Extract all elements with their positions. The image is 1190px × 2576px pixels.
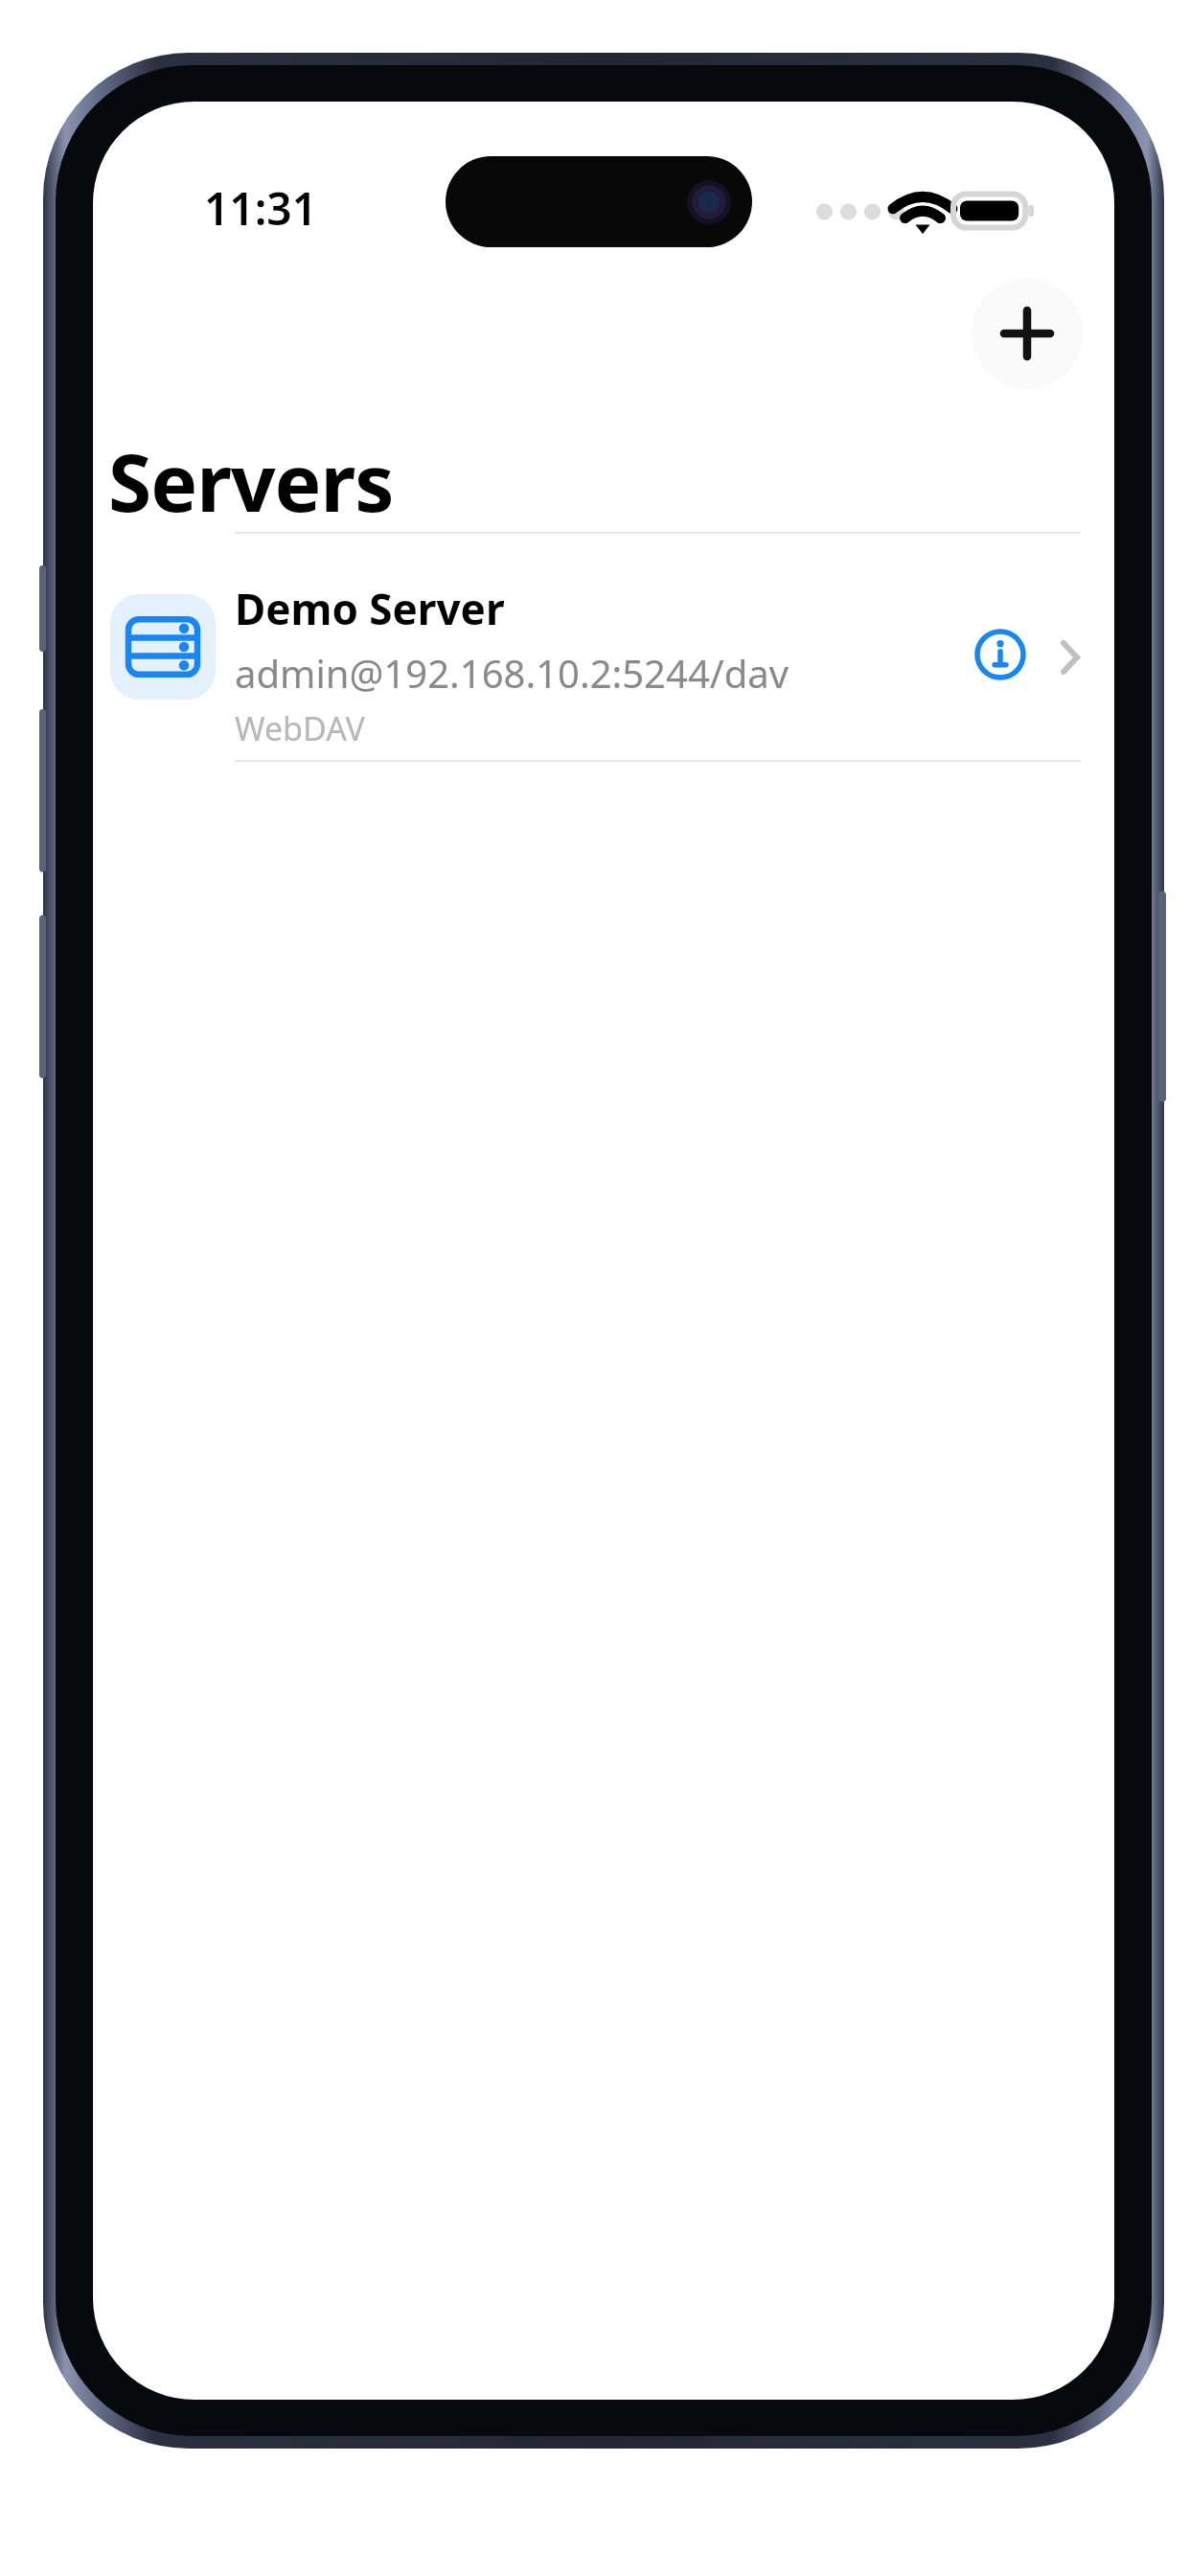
staticText: Servers: [108, 427, 394, 535]
staticText: Demo Server: [235, 580, 505, 637]
button[interactable]: Demo Server: [93, 534, 1114, 766]
staticText: 11:31: [204, 178, 317, 239]
button[interactable]: Server info: [958, 612, 1042, 697]
staticText: admin@192.168.10.2:5244/dav: [235, 647, 789, 699]
staticText: WebDAV: [235, 706, 365, 750]
button[interactable]: Add server: [972, 278, 1083, 389]
